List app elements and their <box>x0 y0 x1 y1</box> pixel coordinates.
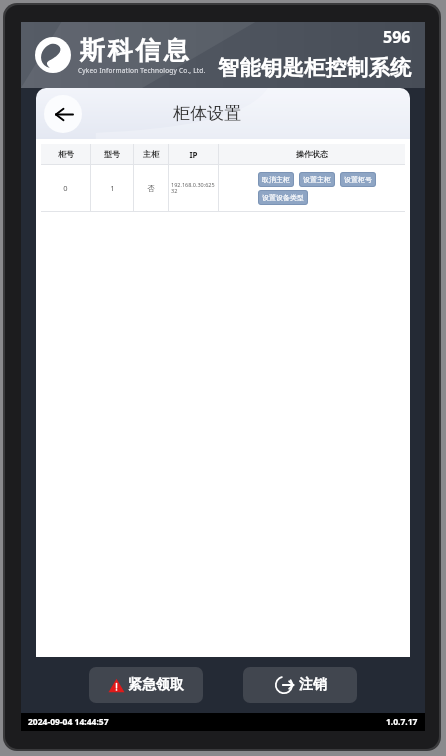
staticText: 柜体设置 <box>173 103 241 124</box>
staticText: 596 <box>383 26 411 48</box>
staticText: 取消主柜 <box>262 175 290 184</box>
staticText: 型号 <box>104 149 120 159</box>
staticText: Cykeo Information Technology Co., Ltd. <box>78 66 206 75</box>
staticText: 否 <box>147 184 155 193</box>
button[interactable]: 取消主柜 <box>258 172 294 187</box>
staticText: 设置主柜 <box>303 175 331 184</box>
staticText: 0 <box>63 183 68 193</box>
button[interactable]: Back <box>44 95 82 133</box>
button[interactable]: 注销 <box>243 667 357 703</box>
staticText: IP <box>189 149 198 160</box>
staticText: 主柜 <box>143 149 159 159</box>
staticText: 设置设备类型 <box>262 193 304 202</box>
staticText: 斯科信息 <box>78 35 190 66</box>
staticText: 2024-09-04 14:44:57 <box>28 716 109 728</box>
staticText: 柜号 <box>58 149 74 159</box>
staticText: 紧急领取 <box>128 676 184 694</box>
button[interactable]: 设置设备类型 <box>258 190 308 205</box>
staticText: 192.168.0.30:62532 <box>171 181 216 195</box>
staticText: 操作状态 <box>296 149 328 159</box>
staticText: 1.0.7.17 <box>386 716 418 728</box>
staticText: 智能钥匙柜控制系统 <box>218 55 412 81</box>
staticText: 设置柜号 <box>344 175 372 184</box>
button[interactable]: 紧急领取 <box>89 667 203 703</box>
staticText: 1 <box>110 183 115 193</box>
button[interactable]: 设置柜号 <box>340 172 376 187</box>
button[interactable]: 设置主柜 <box>299 172 335 187</box>
staticText: 注销 <box>299 676 327 694</box>
